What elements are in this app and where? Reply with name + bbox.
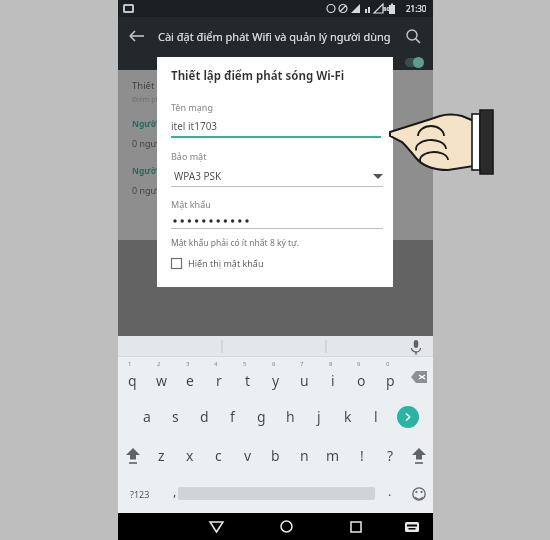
staticText: 0 (386, 360, 390, 368)
button[interactable]: ? (376, 436, 405, 475)
button[interactable]: f (218, 397, 247, 436)
button[interactable]: Search (399, 22, 427, 50)
staticText: Hiển thị mật khẩu (188, 257, 264, 269)
button[interactable]: Back (122, 21, 152, 51)
staticText: b (271, 446, 280, 465)
button[interactable]: Shift (404, 436, 433, 475)
staticText: Tên mạng (171, 101, 213, 113)
button[interactable]: i (318, 357, 347, 397)
staticText: , (173, 482, 177, 500)
button[interactable]: Shift (118, 436, 147, 475)
button[interactable]: . (376, 475, 404, 513)
button[interactable]: p (376, 357, 405, 397)
button[interactable]: WPA3 PSK (171, 166, 383, 186)
button[interactable]: h (276, 397, 305, 436)
button[interactable]: m (318, 436, 347, 475)
button[interactable]: y (261, 357, 290, 397)
staticText: itel it1703 (171, 119, 218, 133)
button[interactable]: Voice input (407, 338, 425, 356)
button[interactable]: u (290, 357, 319, 397)
button[interactable]: ! (347, 436, 376, 475)
staticText: Thiết lập điểm phát sóng Wi-Fi (132, 79, 268, 92)
staticText: Cài đặt điểm phát Wifi và quản lý người … (158, 29, 391, 44)
button[interactable]: l (361, 397, 390, 436)
staticText: WPA3 PSK (174, 169, 222, 183)
button[interactable]: d (190, 397, 219, 436)
button[interactable]: w (147, 357, 176, 397)
staticText: m (326, 446, 340, 465)
staticText: l (374, 407, 378, 426)
button[interactable]: g (247, 397, 276, 436)
button[interactable] (171, 216, 383, 229)
staticText: Mật khẩu (171, 198, 211, 210)
staticText: d (200, 407, 209, 426)
staticText: ?123 (130, 488, 150, 500)
staticText: k (344, 407, 352, 426)
staticText: 21:30 (406, 3, 427, 14)
button[interactable]: n (290, 436, 319, 475)
staticText: n (300, 446, 309, 465)
staticText: t (245, 371, 251, 390)
staticText: q (128, 371, 137, 390)
button[interactable]: itel it1703 (171, 119, 381, 138)
button[interactable]: t (233, 357, 262, 397)
staticText: 4 (214, 360, 218, 368)
button[interactable]: v (233, 436, 262, 475)
button[interactable]: o (347, 357, 376, 397)
button[interactable]: Enter (393, 397, 422, 436)
staticText: e (186, 371, 194, 390)
button[interactable]: Back (186, 513, 246, 540)
staticText: Người dùng bị chặn (132, 165, 216, 177)
button[interactable]: , (162, 475, 188, 513)
button[interactable]: e (175, 357, 204, 397)
staticText: w (156, 371, 168, 390)
button[interactable]: b (261, 436, 290, 475)
staticText: 7 (300, 360, 304, 368)
staticText: 0 người dùng bị chặn (132, 184, 223, 196)
staticText: ! (360, 446, 364, 465)
staticText: 6 (272, 360, 276, 368)
button[interactable]: Keyboard (401, 516, 423, 538)
staticText: r (216, 371, 222, 390)
button[interactable]: Hiển thị mật khẩu (171, 257, 264, 269)
staticText: x (186, 446, 194, 465)
staticText: 2 (157, 360, 161, 368)
staticText: f (230, 407, 235, 426)
button[interactable]: k (333, 397, 362, 436)
staticText: a (143, 407, 151, 426)
button[interactable]: j (304, 397, 333, 436)
staticText: 8 (329, 360, 333, 368)
staticText: y (272, 371, 280, 390)
staticText: h (286, 407, 295, 426)
staticText: Bảo mật (171, 150, 207, 162)
button[interactable]: Backspace (404, 357, 433, 397)
staticText: Mật khẩu phải có ít nhất 8 ký tự. (171, 237, 300, 249)
button[interactable]: x (175, 436, 204, 475)
staticText: 80% (383, 5, 396, 13)
button[interactable]: c (204, 436, 233, 475)
staticText: Điểm phát sóng WPA3 PSK (132, 95, 220, 105)
button[interactable]: ?123 (118, 475, 162, 513)
staticText: . (388, 482, 392, 500)
button[interactable]: r (204, 357, 233, 397)
staticText: o (357, 371, 366, 390)
button[interactable]: Emoji (404, 475, 433, 513)
staticText: 0 người dùng được kết nối (132, 137, 245, 149)
staticText: c (215, 446, 222, 465)
button[interactable]: z (147, 436, 176, 475)
staticText: 1 (128, 360, 132, 368)
staticText: u (300, 371, 309, 390)
button[interactable]: Home (256, 513, 316, 540)
button[interactable]: q (118, 357, 147, 397)
button[interactable]: a (132, 397, 161, 436)
button[interactable]: s (161, 397, 190, 436)
button[interactable]: Recent apps (326, 513, 386, 540)
staticText: s (172, 407, 179, 426)
staticText: Người dùng được phép (132, 118, 231, 130)
staticText: 5 (243, 360, 247, 368)
staticText: z (158, 446, 165, 465)
